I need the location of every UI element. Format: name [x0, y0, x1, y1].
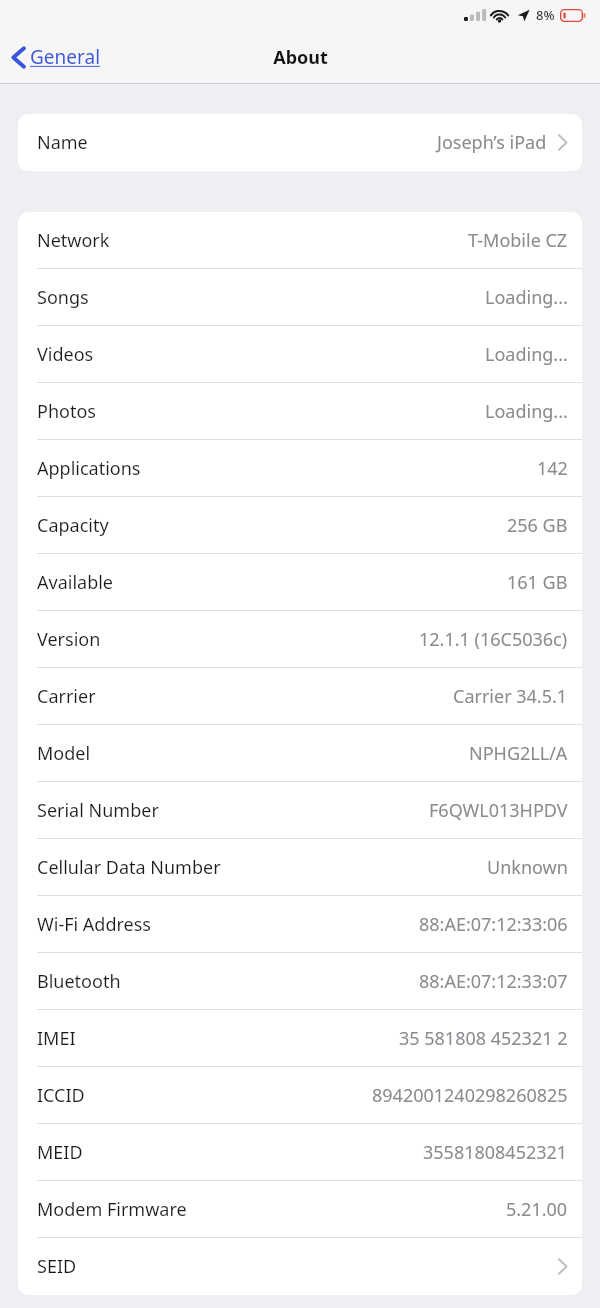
- staticText: Network: [37, 228, 110, 253]
- staticText: About: [273, 45, 328, 70]
- staticText: Applications: [37, 456, 141, 481]
- button[interactable]: Wi-Fi Address: [18, 896, 582, 953]
- button[interactable]: ICCID: [18, 1067, 582, 1124]
- staticText: Videos: [37, 342, 94, 367]
- button[interactable]: Modem Firmware: [18, 1181, 582, 1238]
- button[interactable]: Cellular Data Number: [18, 839, 582, 896]
- staticText: Version: [37, 627, 101, 652]
- staticText: General: [30, 44, 101, 70]
- button[interactable]: Serial Number: [18, 782, 582, 839]
- other: Open: [557, 133, 568, 152]
- staticText: 35581808452321: [423, 1140, 568, 1165]
- other: Open: [557, 1257, 568, 1276]
- staticText: F6QWL013HPDV: [429, 798, 568, 823]
- staticText: 256 GB: [507, 513, 568, 538]
- staticText: MEID: [37, 1140, 83, 1165]
- staticText: Joseph’s iPad: [437, 130, 547, 155]
- button[interactable]: Version: [18, 611, 582, 668]
- staticText: Serial Number: [37, 798, 159, 823]
- button[interactable]: Bluetooth: [18, 953, 582, 1010]
- staticText: Loading...: [485, 342, 568, 367]
- staticText: 8942001240298260825: [372, 1083, 568, 1108]
- staticText: Modem Firmware: [37, 1197, 187, 1222]
- staticText: Wi-Fi Address: [37, 912, 151, 937]
- staticText: 88:AE:07:12:33:06: [419, 912, 568, 937]
- button[interactable]: Carrier: [18, 668, 582, 725]
- button[interactable]: General: [8, 40, 105, 74]
- staticText: SEID: [37, 1254, 77, 1279]
- button[interactable]: Applications: [18, 440, 582, 497]
- button[interactable]: Network: [18, 212, 582, 269]
- staticText: Name: [37, 130, 88, 155]
- staticText: 12.1.1 (16C5036c): [419, 627, 568, 652]
- button[interactable]: IMEI: [18, 1010, 582, 1067]
- staticText: 5.21.00: [506, 1197, 568, 1222]
- staticText: ICCID: [37, 1083, 85, 1108]
- button[interactable]: Model: [18, 725, 582, 782]
- staticText: 142: [537, 456, 568, 481]
- staticText: Model: [37, 741, 91, 766]
- staticText: Cellular Data Number: [37, 855, 221, 880]
- staticText: Capacity: [37, 513, 109, 538]
- button[interactable]: Songs: [18, 269, 582, 326]
- staticText: Loading...: [485, 399, 568, 424]
- staticText: Loading...: [485, 285, 568, 310]
- staticText: Carrier: [37, 684, 96, 709]
- staticText: 8%: [536, 6, 555, 24]
- staticText: NPHG2LL/A: [469, 741, 568, 766]
- staticText: Photos: [37, 399, 96, 424]
- staticText: IMEI: [37, 1026, 76, 1051]
- button[interactable]: Photos: [18, 383, 582, 440]
- button[interactable]: Capacity: [18, 497, 582, 554]
- staticText: 35 581808 452321 2: [399, 1026, 568, 1051]
- staticText: 161 GB: [507, 570, 568, 595]
- staticText: Songs: [37, 285, 89, 310]
- staticText: Unknown: [487, 855, 568, 880]
- staticText: 88:AE:07:12:33:07: [419, 969, 568, 994]
- button[interactable]: Name: [18, 114, 582, 171]
- staticText: Bluetooth: [37, 969, 121, 994]
- button[interactable]: Available: [18, 554, 582, 611]
- staticText: T-Mobile CZ: [468, 228, 568, 253]
- button[interactable]: MEID: [18, 1124, 582, 1181]
- button[interactable]: SEID: [18, 1238, 582, 1295]
- staticText: Carrier 34.5.1: [453, 684, 568, 709]
- button[interactable]: Videos: [18, 326, 582, 383]
- staticText: Available: [37, 570, 113, 595]
